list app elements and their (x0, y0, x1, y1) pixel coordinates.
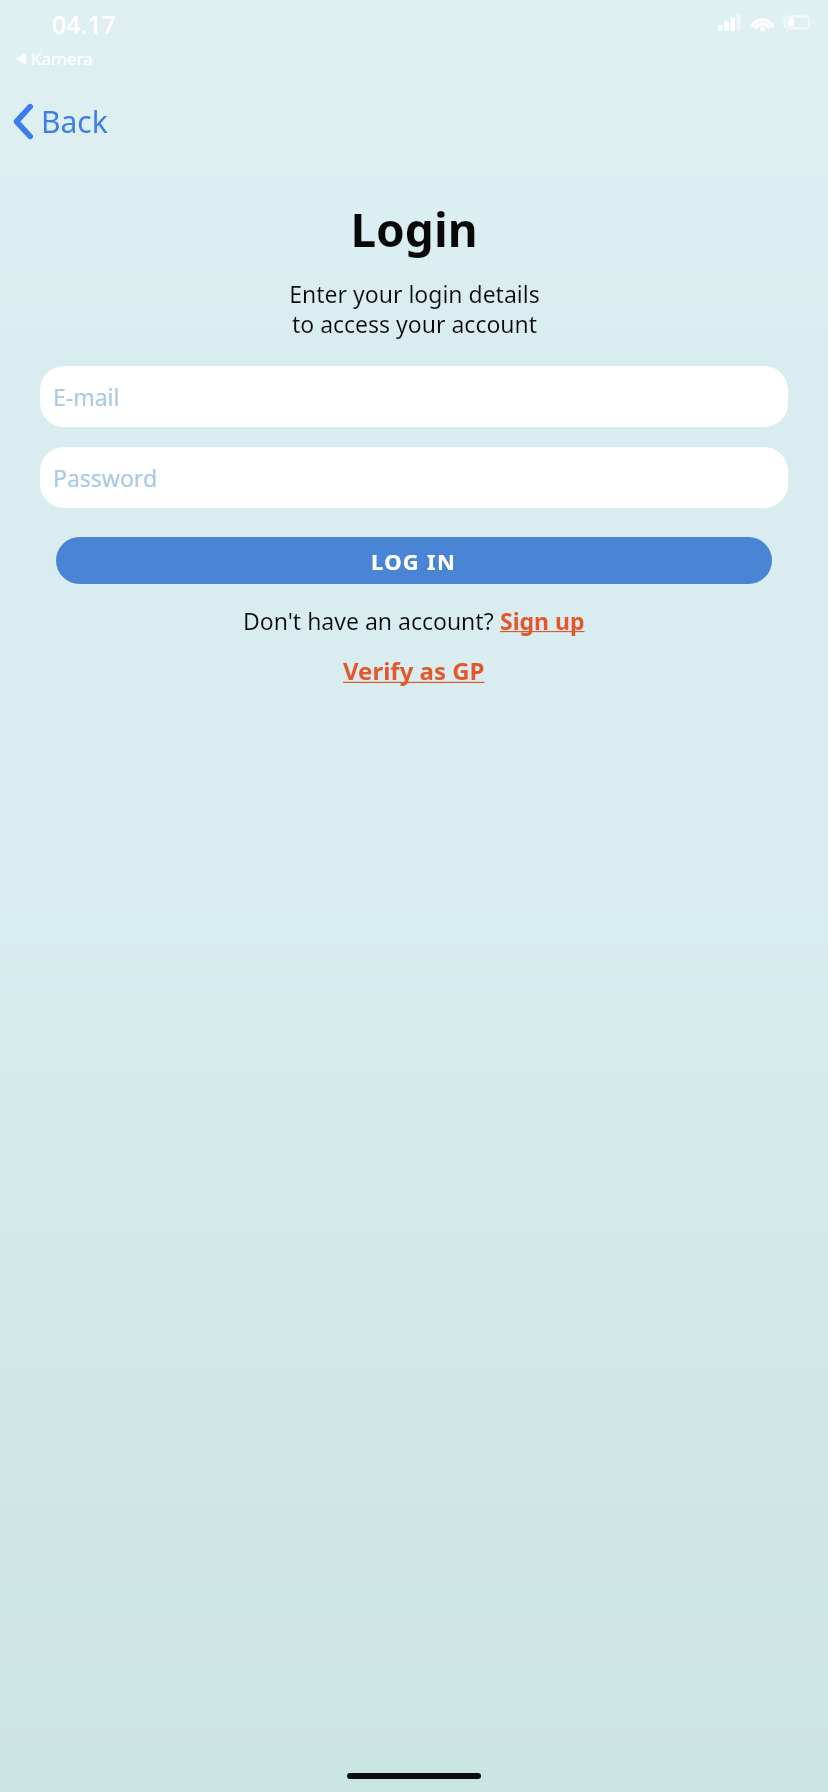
staticText: Sign up (500, 605, 585, 636)
staticText: Don't have an account? (243, 605, 500, 636)
staticText: E-mail (53, 381, 120, 412)
button[interactable]: Sign up (500, 605, 585, 636)
staticText: Back (41, 101, 108, 142)
staticText: 04.17 (52, 7, 117, 41)
staticText: Login (350, 198, 478, 261)
staticText: Verify as GP (343, 654, 485, 687)
button[interactable]: Verify as GP (339, 650, 489, 691)
button[interactable]: LOG IN (56, 537, 772, 584)
staticText: Kamera (31, 47, 93, 70)
staticText: Enter your login details to access your … (289, 278, 540, 340)
other: Back (14, 105, 33, 138)
button[interactable]: E-mail (40, 366, 788, 427)
button[interactable]: Back (8, 96, 114, 147)
button[interactable]: Password (40, 447, 788, 508)
staticText: Password (53, 462, 158, 493)
staticText: LOG IN (371, 546, 457, 576)
